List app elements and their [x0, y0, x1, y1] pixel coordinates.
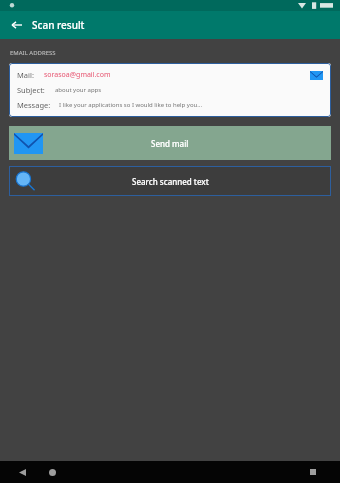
staticText: about your apps [55, 86, 102, 94]
staticText: Mail: [17, 70, 34, 80]
staticText: Message: [17, 100, 51, 110]
staticText: Scan result [32, 18, 85, 32]
button[interactable]: Mail: [9, 63, 331, 117]
button[interactable]: Email [309, 70, 323, 80]
staticText: I like your applications so I would like… [59, 101, 203, 109]
button[interactable]: Home [44, 464, 60, 480]
button[interactable]: Back [6, 14, 28, 36]
button[interactable]: Search scanned text [9, 166, 331, 196]
button[interactable]: Recents [305, 464, 321, 480]
staticText: Search scanned text [132, 176, 209, 187]
staticText: Subject: [17, 85, 45, 95]
button[interactable]: Back [14, 464, 30, 480]
staticText: Send mail [151, 138, 189, 149]
button[interactable]: Send mail [9, 126, 331, 160]
staticText: EMAIL ADDRESS [10, 49, 56, 57]
staticText: sorasoa@gmail.com [44, 70, 111, 80]
